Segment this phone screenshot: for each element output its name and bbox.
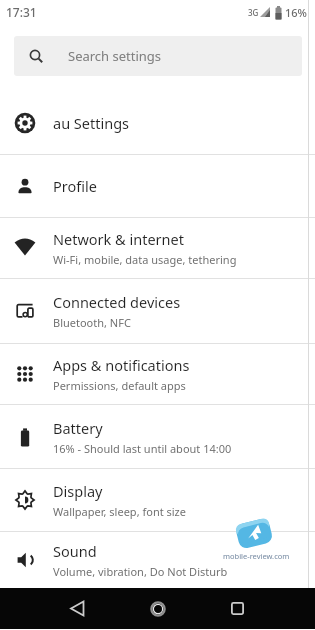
staticText: 16%	[285, 5, 307, 20]
button[interactable]: Profile	[0, 155, 315, 217]
staticText: Search settings	[68, 47, 162, 65]
button[interactable]: au Settings	[0, 91, 315, 154]
staticText: 17:31	[6, 4, 37, 20]
staticText: Volume, vibration, Do Not Disturb	[53, 564, 228, 579]
staticText: Wi-Fi, mobile, data usage, tethering	[53, 252, 237, 267]
staticText: Apps & notifications	[53, 355, 190, 375]
staticText: mobile-review.com	[223, 551, 290, 561]
staticText: Battery	[53, 418, 103, 438]
button[interactable]	[217, 588, 258, 629]
staticText: Permissions, default apps	[53, 378, 186, 393]
staticText: 16% - Should last until about 14:00	[53, 441, 232, 456]
button[interactable]: Search settings	[14, 36, 302, 76]
button[interactable]: Connected devices	[0, 279, 315, 343]
button[interactable]	[137, 588, 178, 629]
staticText: Connected devices	[53, 292, 181, 312]
button[interactable]	[57, 588, 98, 629]
button[interactable]: Apps & notifications	[0, 344, 315, 404]
button[interactable]: Network & internet	[0, 218, 315, 278]
button[interactable]: Display	[0, 469, 315, 531]
button[interactable]: Sound	[0, 532, 315, 588]
staticText: Display	[53, 481, 103, 501]
staticText: Wallpaper, sleep, font size	[53, 504, 186, 519]
staticText: 3G	[248, 7, 259, 18]
staticText: au Settings	[53, 113, 130, 133]
staticText: Profile	[53, 176, 97, 196]
staticText: Bluetooth, NFC	[53, 315, 131, 330]
staticText: Sound	[53, 541, 97, 561]
staticText: Network & internet	[53, 229, 184, 249]
button[interactable]: Battery	[0, 405, 315, 468]
